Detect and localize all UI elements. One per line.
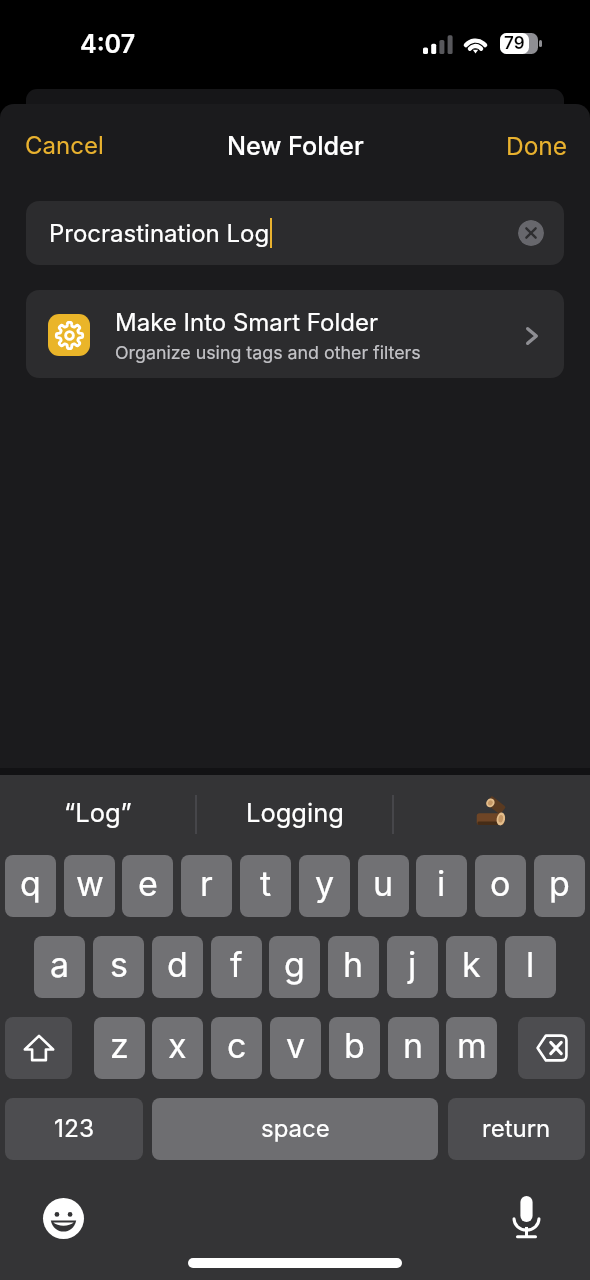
staticText: 123 (54, 1113, 95, 1143)
staticText: z (110, 1025, 129, 1066)
button[interactable]: Logging (196, 775, 394, 839)
button[interactable]: a (34, 936, 85, 998)
staticText: v (286, 1025, 306, 1066)
button[interactable]: space (152, 1098, 438, 1160)
button[interactable]: f (211, 936, 262, 998)
staticText: r (200, 863, 213, 904)
staticText: 4:07 (80, 29, 136, 59)
button[interactable]: Wood emoji suggestion (394, 775, 590, 839)
staticText: u (373, 863, 394, 904)
staticText: t (260, 863, 272, 904)
button[interactable]: v (270, 1017, 321, 1079)
staticText: c (227, 1025, 247, 1066)
button[interactable]: Done (492, 121, 582, 171)
staticText: g (284, 944, 305, 985)
staticText: a (50, 944, 70, 985)
button[interactable]: j (387, 936, 438, 998)
button[interactable]: p (534, 855, 585, 917)
button[interactable]: q (5, 855, 56, 917)
button[interactable]: m (446, 1017, 497, 1079)
staticText: Organize using tags and other filters (115, 342, 421, 364)
staticText: b (344, 1025, 365, 1066)
staticText: o (490, 863, 511, 904)
staticText: j (408, 944, 417, 985)
button[interactable]: c (211, 1017, 262, 1079)
staticText: space (261, 1114, 330, 1143)
staticText: p (549, 863, 570, 904)
staticText: q (20, 863, 41, 904)
button[interactable]: r (181, 855, 232, 917)
button[interactable]: Make Into Smart Folder (26, 290, 564, 378)
staticText: New Folder (227, 131, 364, 161)
staticText: return (482, 1114, 551, 1143)
button[interactable]: Procrastination Log (26, 201, 564, 265)
button[interactable]: u (358, 855, 409, 917)
button[interactable]: h (328, 936, 379, 998)
button[interactable]: s (93, 936, 144, 998)
button[interactable]: “Log” (0, 775, 196, 839)
staticText: n (403, 1025, 424, 1066)
button[interactable]: l (505, 936, 556, 998)
button[interactable]: Backspace (518, 1017, 585, 1079)
staticText: k (462, 944, 481, 985)
staticText: f (230, 944, 243, 985)
button[interactable]: Emoji keyboard (43, 1198, 84, 1239)
staticText: h (343, 944, 364, 985)
button[interactable]: o (475, 855, 526, 917)
button[interactable]: x (152, 1017, 203, 1079)
button[interactable]: return (448, 1098, 585, 1160)
button[interactable]: y (299, 855, 350, 917)
staticText: i (437, 863, 446, 904)
button[interactable]: b (329, 1017, 380, 1079)
staticText: e (138, 863, 158, 904)
staticText: 79 (504, 33, 525, 54)
staticText: y (315, 863, 335, 904)
button[interactable]: d (152, 936, 203, 998)
staticText: “Log” (64, 797, 132, 828)
button[interactable]: i (416, 855, 467, 917)
staticText: w (76, 863, 104, 904)
staticText: Cancel (25, 131, 104, 160)
staticText: Procrastination Log (49, 219, 270, 248)
button[interactable]: k (446, 936, 497, 998)
staticText: x (168, 1025, 187, 1066)
staticText: Done (506, 131, 568, 161)
staticText: Make Into Smart Folder (115, 308, 378, 337)
button[interactable]: z (94, 1017, 145, 1079)
button[interactable]: t (240, 855, 291, 917)
button[interactable]: Dictation (508, 1194, 545, 1241)
button[interactable]: Clear text (518, 220, 544, 246)
button[interactable]: 123 (5, 1098, 143, 1160)
button[interactable]: Shift (5, 1017, 72, 1079)
staticText: d (167, 944, 188, 985)
staticText: m (457, 1025, 487, 1066)
staticText: l (526, 944, 535, 985)
button[interactable]: g (269, 936, 320, 998)
button[interactable]: n (388, 1017, 439, 1079)
button[interactable]: w (64, 855, 115, 917)
staticText: Logging (246, 797, 344, 828)
button[interactable]: Cancel (11, 121, 118, 170)
staticText: s (110, 944, 128, 985)
button[interactable]: e (122, 855, 173, 917)
